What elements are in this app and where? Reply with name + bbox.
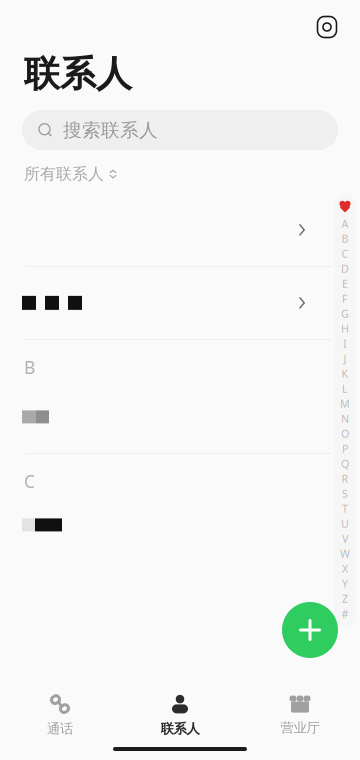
button[interactable] xyxy=(0,495,360,555)
staticText: 联系人 xyxy=(24,52,132,96)
staticText: 通话 xyxy=(47,721,73,737)
staticText: A xyxy=(341,216,348,231)
staticText: Z xyxy=(342,591,348,606)
button[interactable]: 所有联系人 xyxy=(24,164,117,184)
staticText: H xyxy=(341,321,349,336)
staticText: I xyxy=(343,336,347,351)
staticText: V xyxy=(342,531,348,546)
staticText: N xyxy=(341,411,349,426)
button[interactable] xyxy=(0,267,360,339)
staticText: Q xyxy=(341,456,349,471)
button[interactable] xyxy=(0,381,360,453)
staticText: F xyxy=(342,291,348,306)
staticText: X xyxy=(342,561,348,576)
staticText: R xyxy=(341,471,348,486)
staticText: B xyxy=(24,356,35,379)
button[interactable]: 联系人 xyxy=(120,690,240,741)
staticText: # xyxy=(341,606,348,621)
staticText: 营业厅 xyxy=(280,720,319,736)
staticText: P xyxy=(342,441,348,456)
staticText: J xyxy=(343,351,346,366)
staticText: 搜索联系人 xyxy=(63,119,158,142)
staticText: L xyxy=(342,381,348,396)
staticText: 所有联系人 xyxy=(24,164,104,184)
staticText: M xyxy=(340,396,350,411)
button[interactable] xyxy=(0,194,360,266)
button[interactable]: Settings xyxy=(312,12,342,42)
staticText: S xyxy=(342,486,348,501)
staticText: G xyxy=(341,306,349,321)
staticText: K xyxy=(341,366,348,381)
button[interactable]: 搜索联系人 xyxy=(22,110,338,150)
staticText: C xyxy=(24,470,35,493)
staticText: W xyxy=(340,546,350,561)
button[interactable]: 通话 xyxy=(0,690,120,741)
staticText: Y xyxy=(342,576,348,591)
staticText: D xyxy=(341,261,349,276)
staticText: O xyxy=(341,426,349,441)
staticText: T xyxy=(342,501,348,516)
staticText: C xyxy=(341,246,348,261)
staticText: E xyxy=(342,276,348,291)
button[interactable]: 营业厅 xyxy=(240,691,360,740)
button[interactable]: Add contact xyxy=(282,602,338,658)
staticText: 联系人 xyxy=(160,721,199,737)
staticText: U xyxy=(341,516,349,531)
staticText: B xyxy=(341,231,348,246)
